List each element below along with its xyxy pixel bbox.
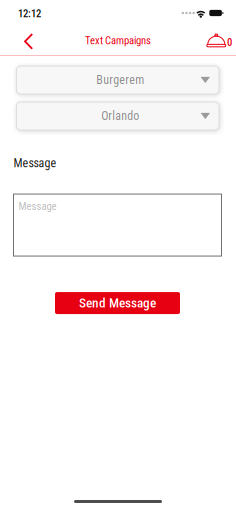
staticText: Message (13, 156, 56, 170)
staticText: 12:12 (18, 7, 41, 20)
staticText: 0 (227, 36, 232, 48)
button[interactable]: Back (0, 27, 45, 54)
staticText: Send Message (79, 295, 156, 311)
button[interactable]: Send Message (55, 292, 180, 314)
button[interactable]: Orlando (16, 102, 219, 130)
staticText: Orlando (101, 109, 139, 123)
staticText: Message (18, 200, 56, 213)
button[interactable]: Notifications (207, 30, 236, 50)
staticText: Burgerem (96, 73, 144, 87)
button[interactable]: Burgerem (16, 66, 219, 94)
staticText: Text Campaigns (85, 34, 151, 47)
